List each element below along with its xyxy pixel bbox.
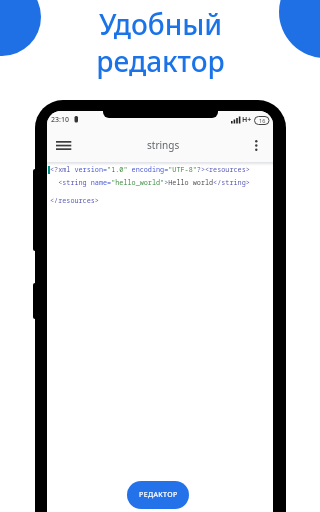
staticText: Удобный редактор	[96, 5, 225, 80]
staticText: </resources>	[50, 196, 99, 205]
button[interactable]	[51, 136, 75, 154]
staticText: <string name="hello_world">Hello world</…	[50, 178, 250, 187]
button[interactable]: РЕДАКТОР	[127, 481, 189, 509]
staticText: РЕДАКТОР	[139, 490, 178, 500]
staticText: 23:10	[51, 115, 69, 125]
staticText: H+	[242, 115, 252, 125]
button[interactable]	[246, 136, 266, 154]
staticText: 16	[259, 117, 266, 124]
staticText: <?xml version="1.0" encoding="UTF-8"?><r…	[50, 165, 250, 174]
staticText: strings	[147, 138, 180, 152]
